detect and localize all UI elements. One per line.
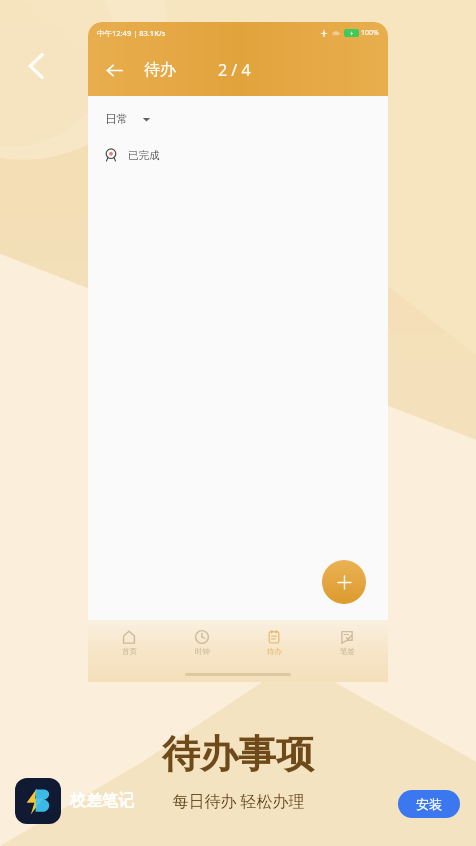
staticText: 首页 [122, 647, 137, 656]
staticText: 笔签 [340, 647, 355, 656]
button[interactable]: 已完成 [103, 144, 160, 166]
staticText: 已完成 [128, 149, 160, 162]
button[interactable]: 首页 [98, 627, 160, 658]
button[interactable]: 时钟 [171, 627, 233, 658]
button[interactable]: App icon [15, 778, 61, 824]
staticText: 待办事项 [162, 730, 314, 778]
staticText: 待办 [144, 60, 176, 80]
button[interactable]: 待办 [243, 627, 305, 658]
staticText: 待办 [267, 647, 282, 656]
button[interactable]: 笔签 [316, 627, 378, 658]
button[interactable]: 安装 [398, 790, 460, 818]
staticText: 100% [361, 28, 379, 38]
button[interactable]: Back [14, 44, 58, 88]
button[interactable]: 日常 [103, 108, 153, 130]
staticText: 日常 [105, 112, 128, 126]
button[interactable]: Add todo [322, 560, 366, 604]
staticText: 时钟 [195, 647, 210, 656]
staticText: 安装 [416, 796, 442, 812]
staticText: 每日待办 轻松办理 [172, 790, 305, 812]
staticText: 中午12:49 | 83.1K/s [97, 28, 166, 38]
button[interactable]: Back [100, 56, 128, 84]
staticText: 2 / 4 [218, 59, 251, 81]
staticText: 校差笔记 [70, 791, 134, 811]
